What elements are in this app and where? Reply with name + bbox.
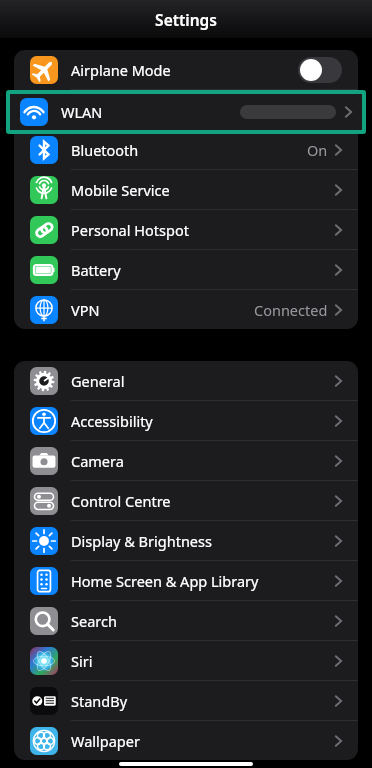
button[interactable]: Control Centre bbox=[14, 481, 358, 520]
button[interactable]: StandBy bbox=[14, 681, 358, 720]
staticText: Display & Brightness bbox=[71, 531, 212, 551]
staticText: VPN bbox=[71, 300, 100, 320]
staticText: Control Centre bbox=[71, 491, 171, 511]
staticText: Home Screen & App Library bbox=[71, 571, 259, 591]
button[interactable]: Personal Hotspot bbox=[14, 210, 358, 249]
button[interactable]: Camera bbox=[14, 441, 358, 480]
staticText: Bluetooth bbox=[71, 140, 139, 160]
staticText: Camera bbox=[71, 451, 124, 471]
button[interactable]: Display & Brightness bbox=[14, 521, 358, 560]
staticText: Battery bbox=[71, 260, 121, 280]
button[interactable]: Bluetooth bbox=[14, 130, 358, 169]
button[interactable]: Airplane Mode toggle bbox=[298, 57, 342, 83]
button[interactable]: VPN bbox=[14, 290, 358, 329]
button[interactable]: Search bbox=[14, 601, 358, 640]
button[interactable]: Home Screen & App Library bbox=[14, 561, 358, 600]
staticText: On bbox=[307, 140, 328, 160]
button[interactable]: Mobile Service bbox=[14, 170, 358, 209]
button[interactable]: Siri bbox=[14, 641, 358, 680]
button[interactable]: Wallpaper bbox=[14, 721, 358, 760]
staticText: Siri bbox=[71, 651, 93, 671]
button[interactable]: WLAN bbox=[10, 94, 362, 130]
staticText: Settings bbox=[155, 9, 217, 30]
button[interactable]: Airplane Mode bbox=[14, 50, 358, 89]
staticText: WLAN bbox=[71, 100, 113, 120]
staticText: Search bbox=[71, 611, 117, 631]
staticText: Personal Hotspot bbox=[71, 220, 189, 240]
button[interactable]: Battery bbox=[14, 250, 358, 289]
button[interactable]: Accessibility bbox=[14, 401, 358, 440]
button[interactable]: WLAN bbox=[14, 90, 358, 129]
button[interactable]: General bbox=[14, 361, 358, 400]
staticText: StandBy bbox=[71, 691, 128, 711]
staticText: General bbox=[71, 371, 125, 391]
staticText: Accessibility bbox=[71, 411, 153, 431]
staticText: Mobile Service bbox=[71, 180, 170, 200]
staticText: Airplane Mode bbox=[71, 60, 171, 80]
staticText: Wallpaper bbox=[71, 731, 140, 751]
staticText: WLAN bbox=[61, 102, 103, 122]
staticText: Connected bbox=[254, 300, 328, 320]
